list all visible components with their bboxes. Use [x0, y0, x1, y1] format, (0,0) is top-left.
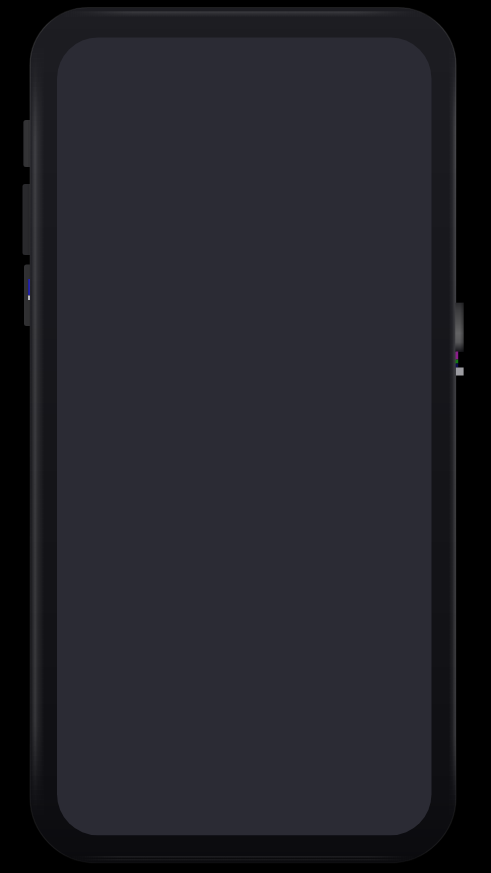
button[interactable]: Phone screen — [0, 0, 491, 873]
